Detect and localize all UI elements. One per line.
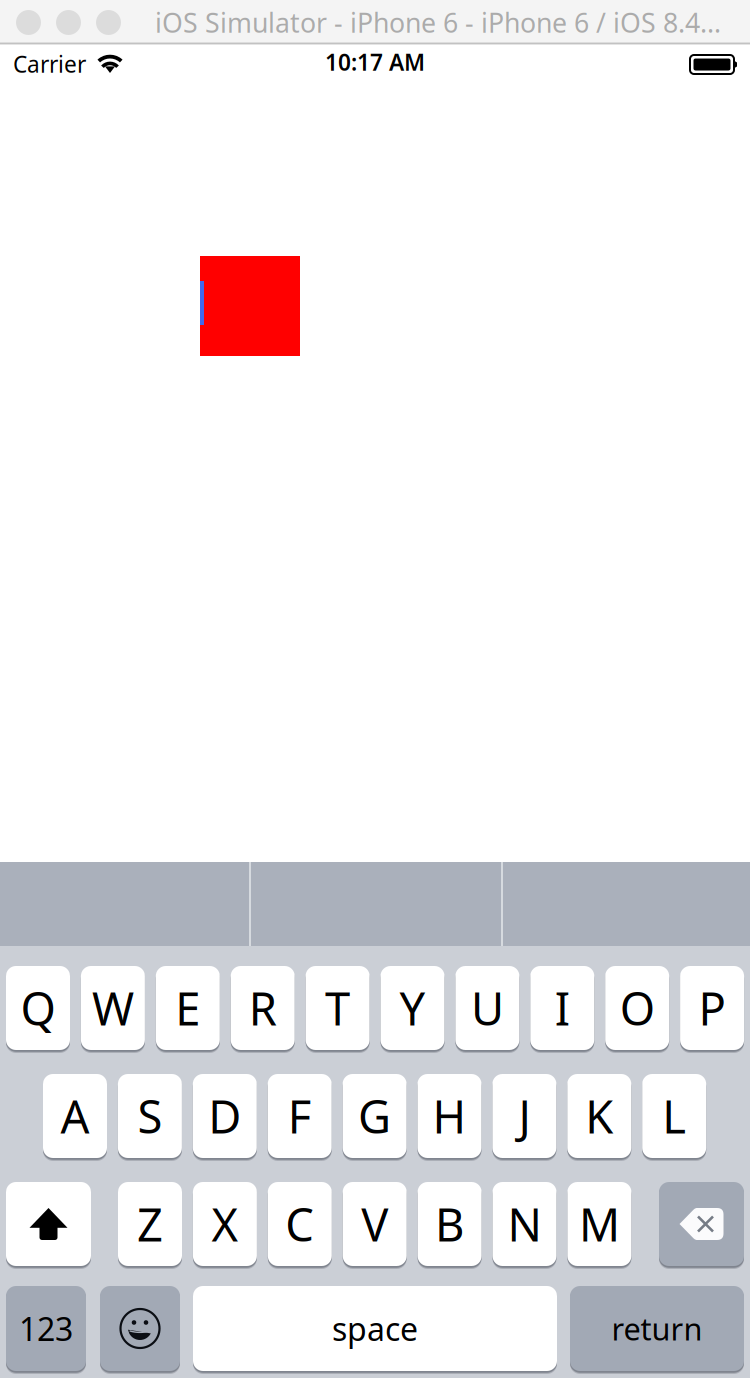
staticText: B [435,1194,464,1254]
staticText: return [611,1308,702,1349]
button[interactable]: N [492,1181,556,1267]
button[interactable]: Delete [659,1181,744,1267]
staticText: L [662,1086,686,1146]
staticText: P [699,978,726,1038]
button[interactable]: V [343,1181,407,1267]
staticText: G [358,1086,391,1146]
staticText: J [518,1086,530,1146]
button[interactable]: I [530,965,594,1051]
staticText: F [288,1086,312,1146]
button[interactable]: Y [380,965,444,1051]
staticText: M [579,1194,620,1254]
staticText: T [325,978,350,1038]
button[interactable]: Z [118,1181,182,1267]
staticText: E [175,978,200,1038]
staticText: 123 [19,1307,73,1350]
button[interactable]: T [306,965,370,1051]
staticText: K [585,1086,613,1146]
button[interactable]: space [193,1285,557,1372]
staticText: X [211,1194,238,1254]
staticText: Carrier [13,49,86,79]
button[interactable]: S [118,1073,182,1159]
staticText: D [208,1086,241,1146]
staticText: Q [20,978,55,1038]
staticText: O [620,978,655,1038]
staticText: R [249,978,277,1038]
button[interactable]: B [418,1181,482,1267]
button[interactable]: F [268,1073,332,1159]
button[interactable]: L [642,1073,706,1159]
staticText: 10:17 AM [325,47,425,77]
staticText: I [555,978,570,1038]
staticText: Y [399,978,425,1038]
button[interactable]: Q [6,965,70,1051]
staticText: N [507,1194,541,1254]
button[interactable]: 123 [6,1285,86,1372]
staticText: V [361,1194,388,1254]
button[interactable]: P [680,965,744,1051]
staticText: iOS Simulator - iPhone 6 - iPhone 6 / iO… [155,5,721,40]
staticText: U [471,978,504,1038]
button[interactable]: D [193,1073,257,1159]
button[interactable]: A [43,1073,107,1159]
button[interactable]: Minimize [56,10,81,35]
button[interactable]: U [455,965,519,1051]
button[interactable]: W [81,965,145,1051]
button[interactable]: return [570,1285,744,1372]
button[interactable]: Zoom [96,10,121,35]
button[interactable]: Shift [6,1181,91,1267]
button[interactable]: Emoji [100,1285,180,1372]
button[interactable]: E [156,965,220,1051]
staticText: W [92,978,134,1038]
staticText: A [60,1086,89,1146]
button[interactable]: K [567,1073,631,1159]
staticText: S [137,1086,162,1146]
button[interactable]: Close [16,10,41,35]
button[interactable]: R [231,965,295,1051]
button[interactable]: X [193,1181,257,1267]
staticText: space [332,1307,418,1350]
staticText: Z [137,1194,163,1254]
button[interactable]: J [492,1073,556,1159]
staticText: C [285,1194,314,1254]
button[interactable]: H [417,1073,481,1159]
button[interactable]: G [343,1073,407,1159]
button[interactable]: M [567,1181,631,1267]
button[interactable]: O [605,965,669,1051]
button[interactable]: C [268,1181,332,1267]
staticText: H [432,1086,466,1146]
